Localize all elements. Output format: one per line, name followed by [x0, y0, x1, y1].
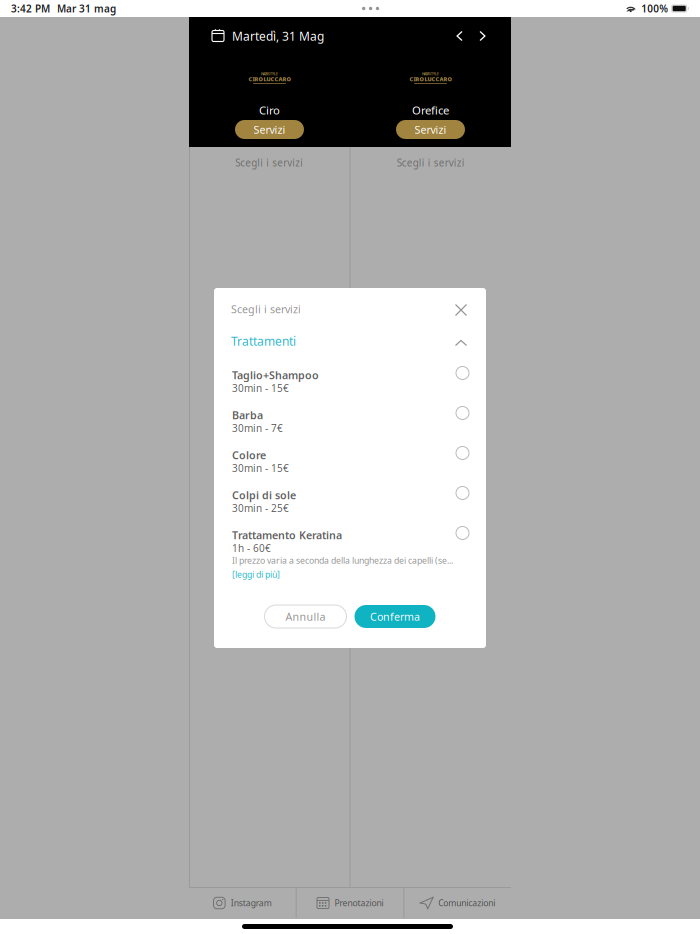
staticText: 100% — [641, 2, 668, 15]
staticText: Mar 31 mag — [57, 2, 116, 15]
staticText: Servizi — [253, 122, 285, 137]
staticText: Martedì, 31 Mag — [232, 28, 324, 44]
button[interactable]: Barba — [214, 405, 486, 445]
staticText: Scegli i servizi — [231, 302, 301, 316]
staticText: Instagram — [231, 897, 272, 909]
staticText: Colpi di sole — [232, 488, 296, 502]
staticText: Trattamento Keratina — [232, 528, 342, 542]
staticText: 30min - 7€ — [232, 421, 283, 435]
staticText: Barba — [232, 408, 263, 422]
button[interactable]: Comunicazioni — [404, 888, 511, 918]
staticText: 30min - 25€ — [232, 501, 289, 515]
staticText: HAIRSTYLE — [422, 72, 439, 76]
staticText: Prenotazioni — [334, 897, 383, 909]
button[interactable]: Close — [451, 299, 471, 319]
staticText: Ciro — [259, 102, 280, 117]
button[interactable]: Servizi — [235, 120, 304, 139]
staticText: Taglio+Shampoo — [232, 368, 319, 382]
button[interactable]: Conferma — [354, 605, 435, 628]
button[interactable]: Previous day — [449, 25, 471, 47]
button[interactable]: Trattamenti — [214, 330, 486, 352]
staticText: Scegli i servizi — [397, 156, 465, 169]
staticText: [leggi di più] — [232, 569, 280, 580]
staticText: CIRO LUCCARO — [409, 75, 451, 83]
button[interactable]: Trattamento Keratina — [214, 525, 486, 583]
staticText: Servizi — [414, 122, 446, 137]
staticText: Orefice — [412, 102, 449, 117]
staticText: Scegli i servizi — [235, 156, 303, 169]
staticText: Il prezzo varia a seconda della lunghezz… — [232, 555, 453, 566]
staticText: Comunicazioni — [438, 897, 495, 909]
button[interactable]: Prenotazioni — [297, 888, 403, 918]
staticText: 30min - 15€ — [232, 461, 289, 475]
staticText: CIRO LUCCARO — [248, 75, 290, 83]
staticText: 3:42 PM — [11, 2, 50, 15]
staticText: Annulla — [285, 609, 325, 624]
staticText: HAIRSTYLE — [261, 72, 278, 76]
button[interactable]: Colpi di sole — [214, 485, 486, 525]
staticText: 1h - 60€ — [232, 541, 271, 555]
button[interactable]: Next day — [471, 25, 493, 47]
staticText: Colore — [232, 448, 266, 462]
button[interactable]: Annulla — [264, 605, 346, 628]
staticText: Trattamenti — [231, 333, 296, 349]
staticText: Conferma — [370, 609, 420, 624]
button[interactable]: Colore — [214, 445, 486, 485]
staticText: 30min - 15€ — [232, 381, 289, 395]
button[interactable]: Servizi — [396, 120, 465, 139]
button[interactable]: Instagram — [189, 888, 296, 918]
button[interactable]: Taglio+Shampoo — [214, 365, 486, 405]
